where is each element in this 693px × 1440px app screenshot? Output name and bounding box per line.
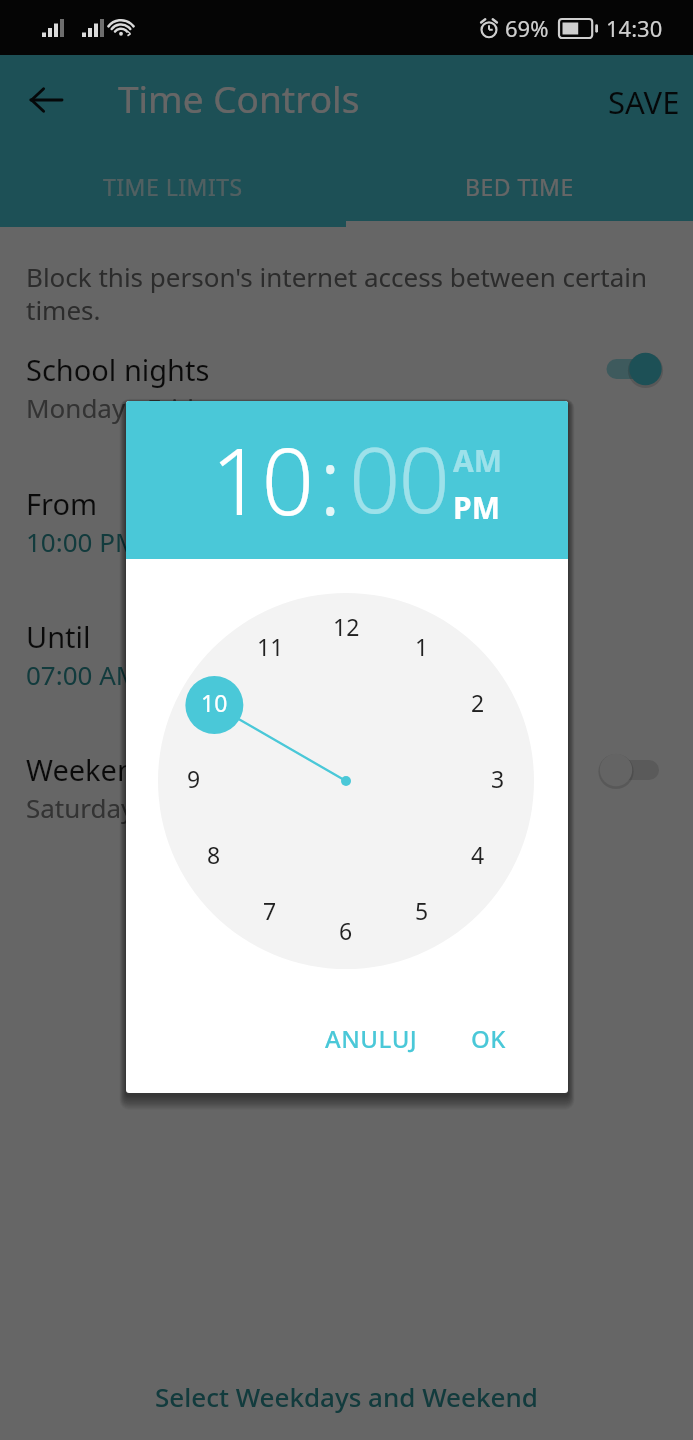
button[interactable]: Back xyxy=(26,80,66,120)
staticText: 10:00 PM xyxy=(26,524,139,559)
staticText: ANULUJ xyxy=(325,1022,418,1055)
staticText: AM xyxy=(453,440,503,481)
staticText: OK xyxy=(471,1022,506,1055)
button[interactable]: 9 xyxy=(164,748,224,808)
button[interactable]: 5 xyxy=(392,880,452,940)
button[interactable]: 2 xyxy=(448,672,508,732)
button[interactable]: PM xyxy=(453,487,500,528)
staticText: SAVE xyxy=(608,81,680,123)
staticText: 3 xyxy=(491,763,505,794)
staticText: 4 xyxy=(471,839,485,870)
button[interactable]: OK xyxy=(459,1012,518,1065)
staticText: Saturday - Sunday xyxy=(26,790,247,825)
staticText: TIME LIMITS xyxy=(103,171,243,202)
staticText: 1 xyxy=(415,631,429,662)
staticText: Time Controls xyxy=(118,73,360,123)
staticText: 8 xyxy=(207,839,221,870)
staticText: 7 xyxy=(263,895,277,926)
button[interactable]: TIME LIMITS xyxy=(0,145,346,227)
staticText: Block this person's internet access betw… xyxy=(26,259,676,328)
staticText: 5 xyxy=(415,895,429,926)
button[interactable]: BED TIME xyxy=(346,145,693,227)
staticText: 07:00 AM xyxy=(26,657,140,692)
staticText: 10 xyxy=(201,687,228,718)
staticText: : xyxy=(319,417,342,542)
button[interactable]: 6 xyxy=(316,900,376,960)
button[interactable]: 10 xyxy=(184,672,244,732)
staticText: Monday - Friday xyxy=(26,390,222,425)
button[interactable]: 1 xyxy=(392,616,452,676)
button[interactable]: 3 xyxy=(468,748,528,808)
staticText: Weekends xyxy=(26,750,167,789)
button[interactable]: SAVE xyxy=(598,75,690,129)
button[interactable]: School nights on xyxy=(596,347,672,391)
staticText: BED TIME xyxy=(465,171,574,202)
staticText: 2 xyxy=(471,687,485,718)
button[interactable]: 8 xyxy=(184,824,244,884)
button[interactable]: 11 xyxy=(240,616,300,676)
staticText: 69% xyxy=(505,13,549,43)
staticText: 6 xyxy=(339,915,353,946)
button[interactable]: Weekends xyxy=(0,736,693,826)
staticText: Until xyxy=(26,617,91,656)
button[interactable]: 12 xyxy=(316,596,376,656)
button[interactable]: Weekends off xyxy=(596,748,672,792)
staticText: PM xyxy=(453,487,500,528)
staticText: 11 xyxy=(257,631,284,662)
button[interactable]: 4 xyxy=(448,824,508,884)
button[interactable]: Until xyxy=(0,603,693,693)
staticText: 9 xyxy=(187,763,201,794)
staticText: 12 xyxy=(333,611,360,642)
button[interactable]: Select Weekdays and Weekend xyxy=(141,1371,552,1422)
staticText: School nights xyxy=(26,350,210,389)
staticText: 14:30 xyxy=(606,13,663,43)
button[interactable]: 10 xyxy=(211,417,313,542)
button[interactable]: ANULUJ xyxy=(313,1012,430,1065)
button[interactable]: From xyxy=(0,470,693,560)
button[interactable]: 7 xyxy=(240,880,300,940)
button[interactable]: AM xyxy=(453,440,503,481)
button[interactable]: School nights xyxy=(0,336,693,426)
button[interactable]: 00 xyxy=(349,417,448,540)
staticText: Select Weekdays and Weekend xyxy=(155,1379,538,1414)
staticText: From xyxy=(26,484,98,523)
